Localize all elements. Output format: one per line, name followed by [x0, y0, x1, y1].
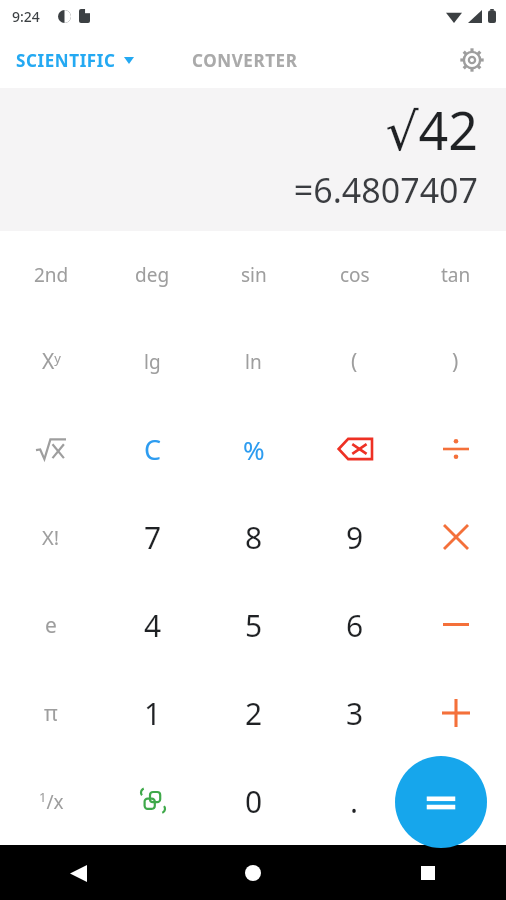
button[interactable]: 8	[203, 493, 304, 581]
button[interactable]: XY	[0, 318, 102, 405]
staticText: lg	[144, 349, 161, 375]
button[interactable]: SCIENTIFIC	[16, 49, 134, 72]
button[interactable]: %	[203, 405, 304, 493]
staticText: 2nd	[34, 262, 69, 288]
button[interactable]: π	[0, 669, 102, 757]
staticText: SCIENTIFIC	[16, 49, 116, 72]
button[interactable]: 3	[304, 669, 405, 757]
staticText: ln	[245, 349, 262, 375]
button[interactable]: 9	[304, 493, 405, 581]
button[interactable]: tan	[405, 231, 506, 318]
staticText: sin	[241, 262, 267, 288]
staticText: tan	[441, 262, 471, 288]
staticText: 3	[346, 693, 364, 734]
staticText: Xy	[42, 347, 61, 376]
button[interactable]: INV	[0, 757, 102, 845]
button[interactable]: PLUS	[405, 669, 506, 757]
button[interactable]: 1	[102, 669, 203, 757]
button[interactable]: 2nd	[0, 231, 102, 318]
button[interactable]: Settings	[452, 40, 492, 80]
staticText: 2	[245, 693, 263, 734]
staticText: 8	[245, 517, 263, 558]
button[interactable]: C	[102, 405, 203, 493]
staticText: 5	[245, 605, 263, 646]
button[interactable]: TIMES	[405, 493, 506, 581]
staticText: )	[452, 347, 459, 376]
staticText: CONVERTER	[192, 49, 298, 72]
button[interactable]: e	[0, 581, 102, 669]
button[interactable]: Recents	[406, 851, 450, 895]
button[interactable]: sin	[203, 231, 304, 318]
button[interactable]: Equals	[395, 756, 487, 848]
staticText: X!	[42, 524, 60, 551]
staticText: .	[350, 781, 359, 822]
button[interactable]: ln	[203, 318, 304, 405]
button[interactable]	[405, 757, 506, 845]
staticText: (	[351, 347, 358, 376]
staticText: 7	[144, 517, 162, 558]
button[interactable]: cos	[304, 231, 405, 318]
staticText: =6.4807407	[293, 167, 478, 213]
staticText: π	[44, 699, 58, 728]
button[interactable]: .	[304, 757, 405, 845]
button[interactable]: Back	[56, 851, 100, 895]
staticText: 9:24	[12, 7, 40, 26]
button[interactable]: DIVIDE	[405, 405, 506, 493]
staticText: e	[45, 611, 57, 640]
staticText: 9	[346, 517, 364, 558]
staticText: 1	[144, 693, 162, 734]
button[interactable]: 2	[203, 669, 304, 757]
button[interactable]: Home	[231, 851, 275, 895]
button[interactable]: SQRT_X	[0, 405, 102, 493]
button[interactable]: (	[304, 318, 405, 405]
staticText: 0	[245, 781, 263, 822]
staticText: √42	[385, 94, 478, 165]
staticText: 1/x	[39, 788, 64, 814]
staticText: C	[144, 431, 162, 468]
staticText: 4	[144, 605, 162, 646]
button[interactable]: 4	[102, 581, 203, 669]
button[interactable]: SWAP	[102, 757, 203, 845]
button[interactable]: MINUS	[405, 581, 506, 669]
staticText: %	[243, 432, 265, 467]
button[interactable]: deg	[102, 231, 203, 318]
staticText: cos	[340, 262, 370, 288]
button[interactable]: CONVERTER	[192, 49, 298, 72]
button[interactable]: 5	[203, 581, 304, 669]
button[interactable]: 6	[304, 581, 405, 669]
staticText: 6	[346, 605, 364, 646]
button[interactable]: 0	[203, 757, 304, 845]
button[interactable]: BACKSPACE	[304, 405, 405, 493]
button[interactable]: 7	[102, 493, 203, 581]
button[interactable]: lg	[102, 318, 203, 405]
staticText: deg	[135, 262, 170, 288]
button[interactable]: XFACT	[0, 493, 102, 581]
button[interactable]: )	[405, 318, 506, 405]
